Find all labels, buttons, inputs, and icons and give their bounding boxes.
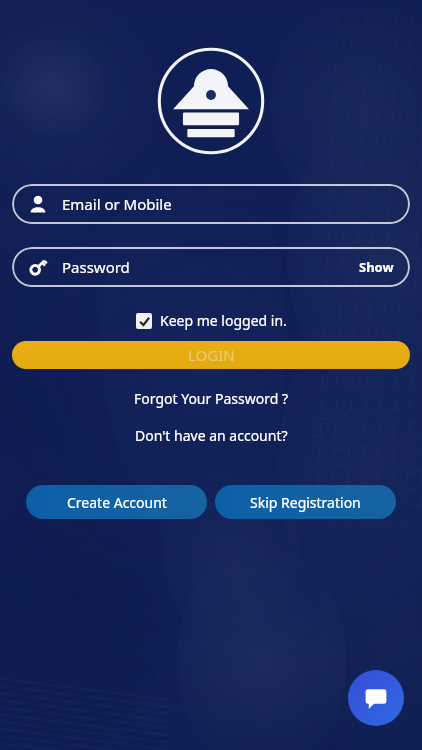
button[interactable]: Create Account — [26, 485, 207, 519]
staticText: Create Account — [67, 493, 167, 512]
button[interactable]: Open chat support — [348, 670, 404, 726]
staticText: Email or Mobile — [62, 194, 394, 214]
staticText: Don't have an account? — [135, 426, 288, 445]
staticText: Keep me logged in. — [160, 311, 287, 330]
button[interactable]: LOGIN — [12, 341, 410, 369]
staticText: Password — [62, 257, 359, 277]
staticText: Forgot Your Password ? — [134, 389, 288, 408]
staticText: Skip Registration — [250, 493, 361, 512]
button[interactable]: Password — [12, 247, 410, 287]
button[interactable]: Keep me logged in. — [132, 309, 291, 332]
staticText: LOGIN — [188, 345, 235, 365]
button[interactable]: Forgot Your Password ? — [130, 385, 292, 412]
button[interactable]: Email or Mobile — [12, 184, 410, 224]
staticText: Show — [359, 258, 394, 276]
button[interactable]: Skip Registration — [215, 485, 396, 519]
